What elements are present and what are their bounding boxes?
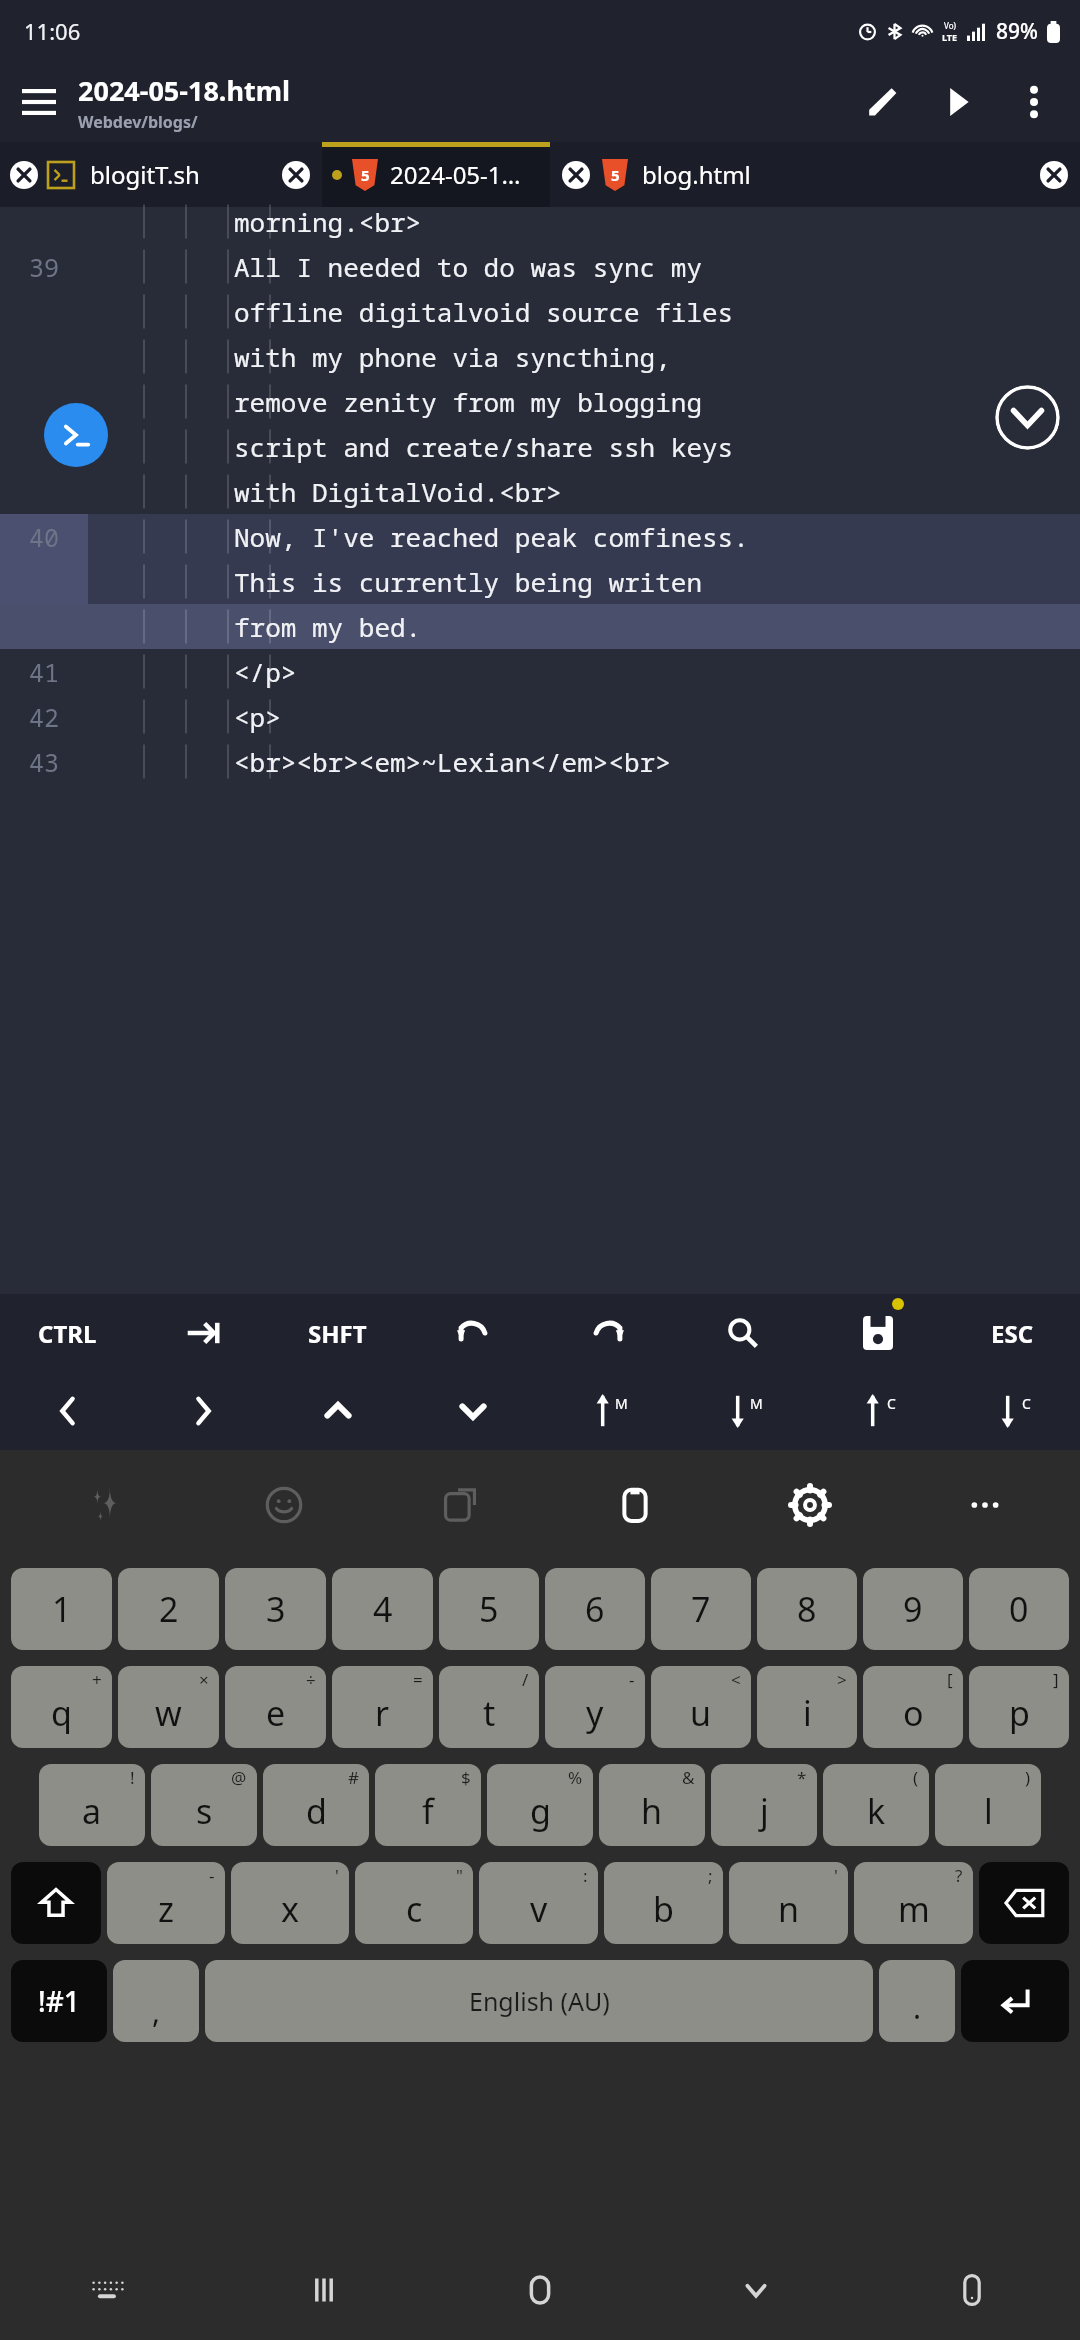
button[interactable]: Move DC [945, 1372, 1080, 1450]
button[interactable]: + [11, 1666, 112, 1748]
button[interactable]: - [545, 1666, 645, 1748]
button[interactable]: 6 [545, 1568, 645, 1650]
button[interactable]: @ [151, 1764, 257, 1846]
button[interactable]: Home [432, 2240, 648, 2340]
button[interactable]: 0 [969, 1568, 1069, 1650]
button[interactable]: ESC [945, 1294, 1080, 1372]
button[interactable]: ) [935, 1764, 1041, 1846]
button[interactable]: 8 [757, 1568, 857, 1650]
button[interactable]: blogitT.sh [48, 142, 270, 207]
button[interactable]: ! [39, 1764, 145, 1846]
staticText: 5 [611, 165, 620, 185]
button[interactable]: Clipboard [547, 1450, 722, 1560]
staticText: y [586, 1690, 604, 1736]
button[interactable]: Keyboard [0, 2240, 216, 2340]
staticText: % [568, 1766, 583, 1789]
button[interactable]: ( [823, 1764, 929, 1846]
button[interactable]: ; [604, 1862, 723, 1944]
staticText: = [413, 1668, 423, 1691]
button[interactable]: !#1 [11, 1960, 107, 2042]
button[interactable]: 9 [863, 1568, 963, 1650]
button[interactable]: SAVE [810, 1294, 945, 1372]
button[interactable]: Backspace [979, 1862, 1069, 1944]
button[interactable]: Settings [722, 1450, 897, 1560]
button[interactable]: REDO [540, 1294, 675, 1372]
button[interactable]: 2 [118, 1568, 219, 1650]
staticText: Vo) [944, 20, 956, 31]
button[interactable]: Terminal [44, 403, 108, 467]
button[interactable]: 1 [11, 1568, 112, 1650]
staticText: , [152, 1991, 161, 2032]
staticText: [ [947, 1668, 953, 1691]
button[interactable]: ' [231, 1862, 349, 1944]
button[interactable]: Edit [844, 64, 920, 140]
button[interactable]: SEARCH [675, 1294, 810, 1372]
staticText: t [483, 1690, 496, 1736]
button[interactable]: ÷ [225, 1666, 326, 1748]
button[interactable]: 3 [225, 1568, 326, 1650]
button[interactable]: Move UM [540, 1372, 675, 1450]
button[interactable]: $ [375, 1764, 481, 1846]
button[interactable]: & [599, 1764, 705, 1846]
button[interactable]: [ [863, 1666, 963, 1748]
staticText: 4 [373, 1586, 393, 1632]
button[interactable]: * [711, 1764, 817, 1846]
button[interactable]: . [879, 1960, 955, 2042]
button[interactable]: % [487, 1764, 593, 1846]
button[interactable]: Move D [405, 1372, 540, 1450]
staticText: ' [335, 1864, 339, 1887]
button[interactable]: Close tab [550, 142, 602, 207]
button[interactable]: Move R [135, 1372, 270, 1450]
button[interactable]: More [897, 1450, 1072, 1560]
staticText: Now, I've reached peak comfiness. [234, 519, 749, 554]
button[interactable]: ? [854, 1862, 973, 1944]
button[interactable]: < [651, 1666, 751, 1748]
button[interactable]: Move DM [675, 1372, 810, 1450]
button[interactable]: UNDO [405, 1294, 540, 1372]
button[interactable]: CTRL [0, 1294, 135, 1372]
button[interactable]: " [355, 1862, 473, 1944]
button[interactable]: SHFT [270, 1294, 405, 1372]
button[interactable]: Run [920, 64, 996, 140]
button[interactable]: Menu [0, 63, 78, 141]
button[interactable]: Back [648, 2240, 864, 2340]
button[interactable]: Recents [216, 2240, 432, 2340]
button[interactable]: Move UC [810, 1372, 945, 1450]
button[interactable]: Close tab [270, 142, 322, 207]
button[interactable]: - [107, 1862, 225, 1944]
button[interactable]: , [113, 1960, 199, 2042]
button[interactable]: Close tab [0, 142, 48, 207]
button[interactable]: Emoji [196, 1450, 372, 1560]
button[interactable]: 5 [439, 1568, 539, 1650]
button[interactable]: Device [864, 2240, 1080, 2340]
button[interactable]: ] [969, 1666, 1069, 1748]
staticText: h [641, 1788, 663, 1834]
staticText: & [682, 1766, 695, 1789]
button[interactable]: Enter [961, 1960, 1069, 2042]
button[interactable]: Shift [11, 1862, 101, 1944]
staticText: + [92, 1668, 102, 1691]
button[interactable]: 4 [332, 1568, 433, 1650]
button[interactable]: Translate [372, 1450, 547, 1560]
button[interactable]: × [118, 1666, 219, 1748]
button[interactable]: 5 [322, 142, 550, 207]
button[interactable]: > [757, 1666, 857, 1748]
button[interactable]: = [332, 1666, 433, 1748]
staticText: 89% [996, 17, 1038, 46]
button[interactable]: Move U [270, 1372, 405, 1450]
button[interactable]: TAB [135, 1294, 270, 1372]
button[interactable]: ' [729, 1862, 848, 1944]
staticText: v [530, 1886, 548, 1932]
button[interactable]: More options [996, 64, 1072, 140]
staticText: offline digitalvoid source files [234, 294, 734, 329]
button[interactable]: AI [20, 1450, 196, 1560]
button[interactable]: Move L [0, 1372, 135, 1450]
staticText: g [530, 1788, 551, 1834]
button[interactable]: Close tab [1028, 142, 1080, 207]
button[interactable]: # [263, 1764, 369, 1846]
button[interactable]: Scroll to bottom [995, 385, 1060, 450]
button[interactable]: / [439, 1666, 539, 1748]
button[interactable]: English (AU) [205, 1960, 873, 2042]
button[interactable]: 7 [651, 1568, 751, 1650]
button[interactable]: : [479, 1862, 598, 1944]
